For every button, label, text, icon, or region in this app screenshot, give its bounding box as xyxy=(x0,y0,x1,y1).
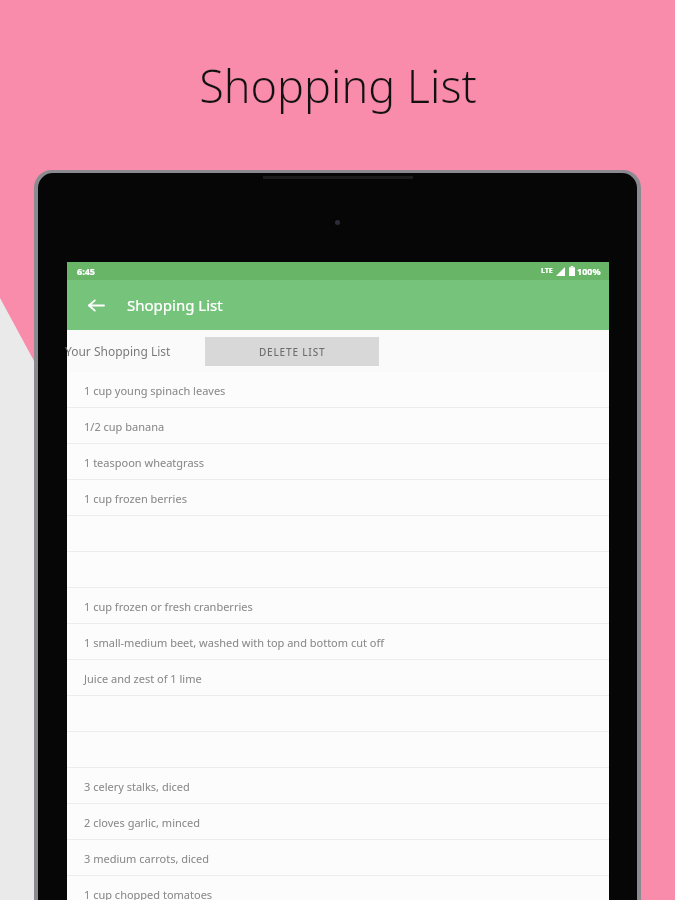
staticText: 3 celery stalks, diced xyxy=(84,779,190,794)
button[interactable]: Juice and zest of 1 lime xyxy=(67,660,609,696)
button[interactable]: 1 cup young spinach leaves xyxy=(67,372,609,408)
staticText: 1/2 cup banana xyxy=(84,419,165,434)
button[interactable]: 3 medium carrots, diced xyxy=(67,840,609,876)
button[interactable]: 1 teaspoon wheatgrass xyxy=(67,444,609,480)
staticText: 1 teaspoon wheatgrass xyxy=(84,455,205,470)
staticText: 100% xyxy=(577,265,601,277)
button[interactable]: DELETE LIST xyxy=(205,337,379,366)
button[interactable]: Back xyxy=(79,289,111,321)
staticText: 3 medium carrots, diced xyxy=(84,851,210,866)
button[interactable]: 2 cloves garlic, minced xyxy=(67,804,609,840)
staticText: 1 cup frozen berries xyxy=(84,491,187,506)
button[interactable]: 1 cup frozen berries xyxy=(67,480,609,516)
staticText: Shopping List xyxy=(199,55,477,116)
button[interactable]: 1 small-medium beet, washed with top and… xyxy=(67,624,609,660)
staticText: 1 cup chopped tomatoes xyxy=(84,887,213,900)
button[interactable]: 1/2 cup banana xyxy=(67,408,609,444)
staticText: 2 cloves garlic, minced xyxy=(84,815,201,830)
button[interactable]: 3 celery stalks, diced xyxy=(67,768,609,804)
staticText: DELETE LIST xyxy=(259,345,326,359)
staticText: 1 cup frozen or fresh cranberries xyxy=(84,599,253,614)
staticText: 6:45 xyxy=(77,265,95,277)
staticText: 1 small-medium beet, washed with top and… xyxy=(84,635,385,650)
button[interactable]: 1 cup frozen or fresh cranberries xyxy=(67,588,609,624)
staticText: LTE xyxy=(541,266,553,276)
staticText: Your Shopping List xyxy=(65,343,171,359)
staticText: Shopping List xyxy=(127,295,223,315)
button[interactable]: 1 cup chopped tomatoes xyxy=(67,876,609,900)
staticText: 1 cup young spinach leaves xyxy=(84,383,226,398)
staticText: Juice and zest of 1 lime xyxy=(84,671,202,686)
